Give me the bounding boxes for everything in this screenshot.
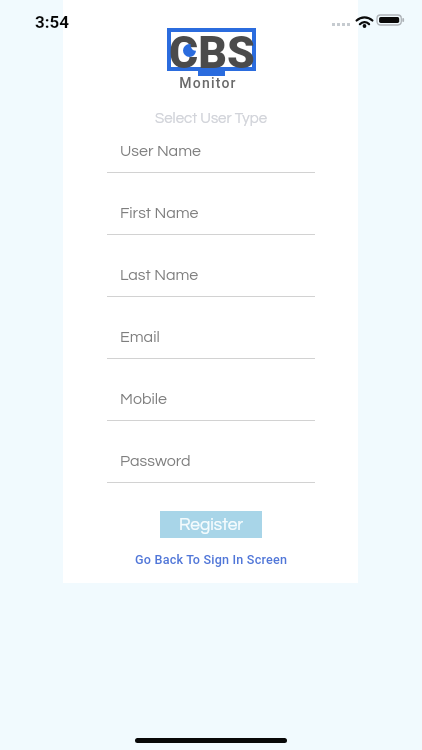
staticText: User Name [120, 143, 201, 159]
other: Battery [377, 15, 405, 25]
button[interactable]: Select User Type [107, 107, 315, 129]
staticText: Go Back To Sign In Screen [135, 552, 288, 567]
staticText: Monitor [0, 75, 419, 91]
staticText: First Name [120, 205, 199, 221]
button[interactable]: First Name [107, 203, 315, 243]
staticText: 3:54 [35, 12, 70, 32]
button[interactable]: User Name [107, 141, 315, 181]
staticText: Last Name [120, 267, 199, 283]
staticText: Register [179, 516, 244, 534]
staticText: Mobile [120, 391, 167, 407]
button[interactable]: Email [107, 327, 315, 367]
other: Wi-Fi [356, 15, 373, 26]
staticText: CBS [169, 27, 255, 70]
button[interactable]: Register [160, 511, 262, 538]
button[interactable]: Go Back To Sign In Screen [126, 549, 296, 569]
button[interactable]: Password [107, 451, 315, 491]
button[interactable]: Last Name [107, 265, 315, 305]
staticText: Email [120, 329, 160, 345]
staticText: Select User Type [155, 111, 268, 126]
staticText: Password [120, 453, 191, 469]
button[interactable]: Mobile [107, 389, 315, 429]
